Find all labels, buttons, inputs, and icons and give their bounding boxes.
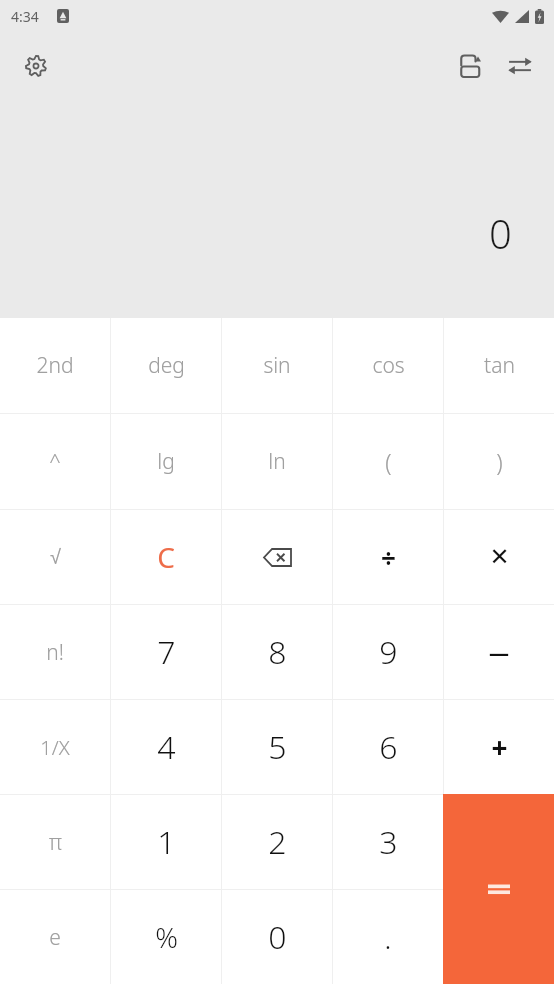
staticText: 2 [268, 820, 287, 864]
staticText: 3 [379, 820, 398, 864]
staticText: ) [496, 446, 503, 477]
button[interactable]: 6 [333, 700, 443, 794]
staticText: 4:34 [11, 7, 39, 26]
staticText: deg [148, 351, 185, 380]
staticText: 1/X [40, 734, 70, 761]
staticText: 6 [379, 725, 398, 769]
staticText: 8 [268, 630, 287, 674]
button[interactable]: C [111, 510, 221, 604]
button[interactable]: lg [111, 414, 221, 509]
staticText: sin [263, 351, 291, 380]
staticText: . [384, 917, 392, 958]
button[interactable]: ÷ [333, 510, 443, 604]
staticText: lg [157, 447, 175, 476]
button[interactable]: Equals [443, 794, 554, 984]
button[interactable]: 4 [111, 700, 221, 794]
staticText: 1 [157, 820, 176, 864]
staticText: ( [385, 446, 392, 477]
button[interactable]: π [0, 795, 110, 889]
staticText: 5 [268, 725, 287, 769]
staticText: tan [484, 351, 515, 380]
button[interactable]: 8 [222, 605, 332, 699]
staticText: ÷ [381, 540, 396, 575]
button[interactable]: deg [111, 318, 221, 413]
staticText: √ [50, 546, 61, 568]
other: Delete [264, 549, 291, 566]
button[interactable]: ( [333, 414, 443, 509]
staticText: π [49, 828, 62, 857]
staticText: 4 [157, 725, 176, 769]
button[interactable]: ✕ [444, 510, 554, 604]
staticText: % [155, 918, 178, 956]
staticText: ^ [49, 448, 61, 475]
staticText: cos [372, 351, 405, 380]
button[interactable]: ln [222, 414, 332, 509]
staticText: e [49, 923, 61, 952]
button[interactable]: . [333, 890, 443, 984]
button[interactable]: tan [444, 318, 554, 413]
staticText: 0 [268, 915, 287, 959]
button[interactable]: 1/X [0, 700, 110, 794]
staticText: ln [268, 447, 286, 476]
staticText: 2nd [36, 351, 74, 380]
button[interactable]: + [444, 700, 554, 794]
button[interactable]: e [0, 890, 110, 984]
button[interactable]: 1 [111, 795, 221, 889]
other: Equals [488, 882, 510, 896]
button[interactable]: 3 [333, 795, 443, 889]
button[interactable]: 2 [222, 795, 332, 889]
staticText: C [157, 538, 175, 576]
staticText: 7 [157, 630, 176, 674]
button[interactable]: Delete [222, 510, 332, 604]
button[interactable]: Convert [496, 42, 544, 90]
button[interactable]: 9 [333, 605, 443, 699]
button[interactable]: n! [0, 605, 110, 699]
button[interactable]: Rotate screen [448, 42, 496, 90]
button[interactable]: 5 [222, 700, 332, 794]
staticText: 0 [489, 206, 512, 260]
staticText: — [489, 639, 509, 666]
button[interactable]: — [444, 605, 554, 699]
button[interactable]: √ [0, 510, 110, 604]
staticText: n! [46, 638, 64, 667]
button[interactable]: 7 [111, 605, 221, 699]
button[interactable]: ) [444, 414, 554, 509]
button[interactable]: % [111, 890, 221, 984]
button[interactable]: Settings [14, 44, 58, 88]
button[interactable]: cos [333, 318, 443, 413]
button[interactable]: sin [222, 318, 332, 413]
button[interactable]: 0 [222, 890, 332, 984]
staticText: ✕ [489, 543, 510, 571]
staticText: + [491, 728, 508, 766]
staticText: 9 [379, 630, 398, 674]
button[interactable]: 2nd [0, 318, 110, 413]
button[interactable]: ^ [0, 414, 110, 509]
